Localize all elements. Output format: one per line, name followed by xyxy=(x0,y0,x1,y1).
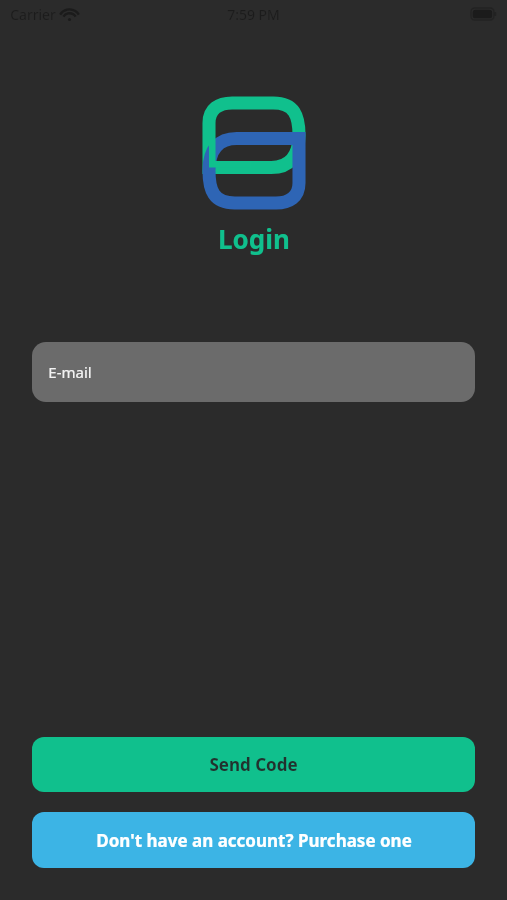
staticText: E-mail xyxy=(48,362,92,382)
button[interactable]: Don't have an account? Purchase one xyxy=(32,812,475,868)
staticText: Don't have an account? Purchase one xyxy=(96,829,412,852)
other: Battery full xyxy=(471,8,497,20)
staticText: Login xyxy=(218,221,290,256)
staticText: Carrier xyxy=(10,5,56,24)
staticText: Send Code xyxy=(209,753,298,776)
staticText: 7:59 PM xyxy=(227,5,280,24)
other: Wi-Fi signal xyxy=(62,9,77,21)
button[interactable]: Send Code xyxy=(32,737,475,792)
button[interactable]: E-mail xyxy=(32,342,475,402)
